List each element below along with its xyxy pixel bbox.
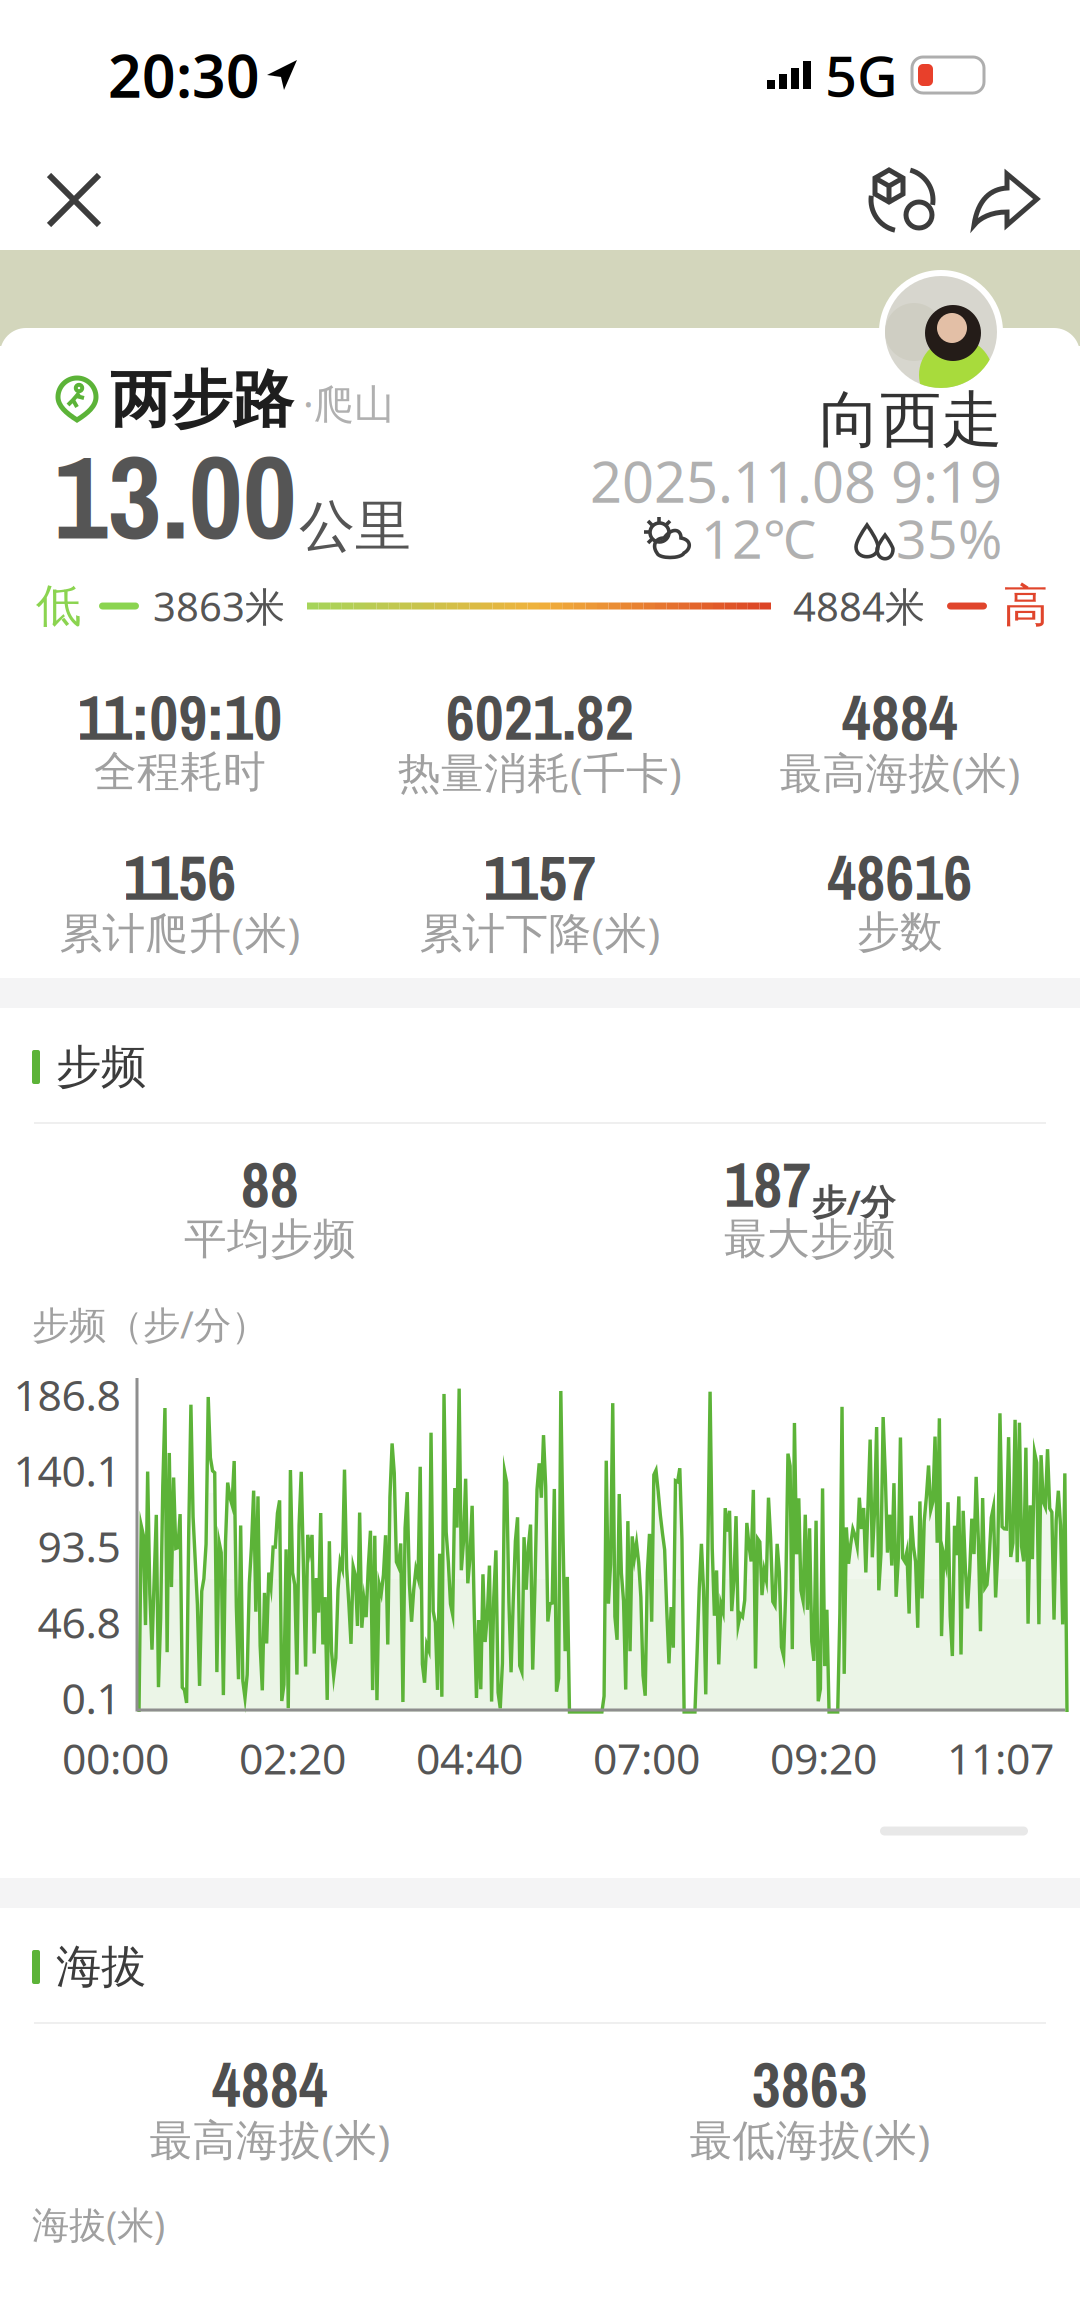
staticText: 累计下降(米) [419, 904, 660, 960]
staticText: 00:00 [62, 1730, 169, 1786]
staticText: 93.5 [37, 1518, 120, 1574]
button[interactable]: Share [954, 148, 1058, 252]
staticText: 海拔(米) [32, 2199, 165, 2249]
staticText: 海拔 [56, 1939, 146, 1995]
staticText: 20:30 [108, 36, 260, 114]
staticText: 07:00 [593, 1730, 700, 1786]
staticText: 步数 [857, 906, 943, 958]
staticText: 平均步频 [184, 1213, 356, 1265]
staticText: 两步路 [110, 362, 293, 438]
staticText: 低 [36, 578, 81, 634]
staticText: 步/分 [811, 1178, 895, 1224]
staticText: 累计爬升(米) [59, 904, 300, 960]
staticText: 最大步频 [724, 1213, 896, 1265]
staticText: 最高海拔(米) [779, 744, 1020, 800]
staticText: 步频（步/分） [32, 1299, 268, 1349]
staticText: 步频 [56, 1039, 146, 1095]
staticText: 0.1 [61, 1669, 120, 1726]
staticText: 35% [896, 503, 1002, 573]
staticText: 88 [241, 1142, 299, 1226]
staticText: 11:07 [947, 1730, 1054, 1786]
staticText: 1156 [123, 835, 236, 919]
staticText: 4884 [212, 2042, 328, 2126]
staticText: 13.00 [54, 417, 297, 575]
staticText: 1157 [483, 835, 596, 919]
staticText: 全程耗时 [94, 746, 266, 798]
staticText: 5G [825, 38, 898, 112]
staticText: 11:09:10 [77, 675, 282, 759]
staticText: 最低海拔(米) [689, 2111, 930, 2167]
staticText: 140.1 [13, 1442, 120, 1498]
staticText: 6021.82 [446, 675, 634, 759]
staticText: 186.8 [13, 1366, 120, 1423]
staticText: 02:20 [239, 1730, 346, 1786]
staticText: 12℃ [701, 503, 816, 573]
button[interactable]: 3D replay [850, 148, 954, 252]
staticText: 04:40 [416, 1730, 523, 1786]
staticText: 3863米 [153, 579, 285, 632]
staticText: 向西走 [819, 382, 1002, 458]
staticText: 最高海拔(米) [149, 2111, 390, 2167]
staticText: 09:20 [770, 1730, 877, 1786]
staticText: 公里 [299, 492, 411, 561]
staticText: 4884 [842, 675, 958, 759]
staticText: 4884米 [793, 579, 925, 632]
staticText: 热量消耗(千卡) [398, 744, 682, 800]
staticText: 187 [724, 1142, 811, 1226]
button[interactable]: Close [26, 152, 122, 248]
staticText: 高 [1003, 578, 1048, 634]
staticText: 2025.11.08 9:19 [590, 444, 1002, 518]
staticText: 48616 [827, 835, 972, 919]
staticText: 3863 [752, 2042, 868, 2126]
staticText: 46.8 [37, 1593, 120, 1650]
staticText: ·爬山 [303, 376, 394, 429]
